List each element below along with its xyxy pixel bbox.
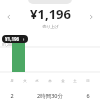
staticText: 土 <box>73 79 77 83</box>
button[interactable]: Previous <box>4 12 14 22</box>
staticText: 2時間30分 <box>37 92 63 99</box>
staticText: 6 <box>86 92 90 99</box>
button[interactable]: Monday earnings bar <box>12 36 25 72</box>
staticText: 日 <box>86 79 90 83</box>
button[interactable]: 2時間30分 <box>35 91 65 100</box>
button[interactable]: 6 <box>84 91 92 100</box>
staticText: 売り上げ <box>42 24 59 29</box>
staticText: 月 <box>10 79 14 83</box>
staticText: ¥1,200 <box>2 42 13 47</box>
staticText: 2 <box>10 92 14 99</box>
button[interactable]: ¥1,196 <box>2 35 28 43</box>
staticText: ¥1,196 <box>30 5 71 23</box>
staticText: 木 <box>48 79 52 83</box>
staticText: 水 <box>35 79 39 83</box>
button[interactable]: Next <box>86 12 96 22</box>
staticText: 火 <box>23 79 27 83</box>
button[interactable]: 2 <box>8 91 16 100</box>
staticText: 金 <box>61 79 65 83</box>
staticText: ¥1,196 <box>5 36 20 42</box>
